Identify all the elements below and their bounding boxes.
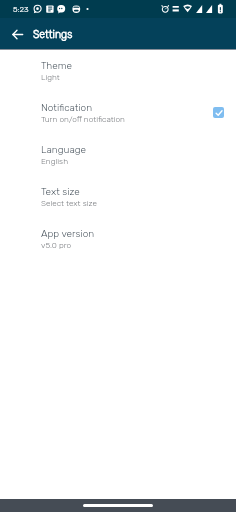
staticText: Text size xyxy=(41,186,80,198)
staticText: Turn on/off notification xyxy=(41,114,125,124)
staticText: Language xyxy=(41,144,87,156)
staticText: Notification xyxy=(41,102,93,114)
button[interactable]: App version xyxy=(0,220,236,262)
staticText: English xyxy=(41,156,68,166)
button[interactable]: Notification xyxy=(0,94,236,136)
staticText: App version xyxy=(41,228,95,240)
staticText: Settings xyxy=(33,28,73,40)
button[interactable]: Back xyxy=(6,23,28,45)
staticText: Light xyxy=(41,72,60,82)
button[interactable]: Toggle notification xyxy=(213,107,224,118)
staticText: v5.0 pro xyxy=(41,240,72,250)
button[interactable]: Text size xyxy=(0,178,236,220)
staticText: Select text size xyxy=(41,198,97,208)
button[interactable]: Language xyxy=(0,136,236,178)
staticText: 5:23 xyxy=(13,5,29,14)
staticText: Theme xyxy=(41,60,72,72)
button[interactable]: Theme xyxy=(0,52,236,94)
